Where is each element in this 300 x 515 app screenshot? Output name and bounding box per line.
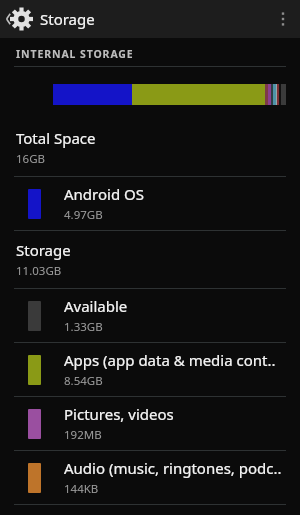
button[interactable]: More options	[266, 0, 300, 38]
staticText: 8.54GB	[64, 373, 103, 389]
staticText: Apps (app data & media cont..	[64, 350, 276, 370]
staticText: Available	[64, 296, 128, 316]
staticText: 192MB	[64, 427, 102, 443]
button[interactable]: Apps (app data & media cont..	[0, 343, 300, 396]
staticText: 1.33GB	[64, 319, 103, 335]
staticText: 144KB	[64, 481, 99, 497]
staticText: Pictures, videos	[64, 404, 174, 424]
staticText: INTERNAL STORAGE	[16, 47, 134, 61]
staticText: 11.03GB	[16, 263, 62, 279]
staticText: Android OS	[64, 184, 144, 204]
staticText: Audio (music, ringtones, podc..	[64, 458, 282, 478]
staticText: Storage	[40, 9, 95, 29]
staticText: Storage	[16, 240, 71, 260]
button[interactable]: Available	[0, 289, 300, 342]
button[interactable]: Back to Settings	[0, 0, 103, 38]
button[interactable]: Android OS	[0, 177, 300, 230]
button[interactable]: Pictures, videos	[0, 397, 300, 450]
button[interactable]: Storage	[0, 231, 300, 288]
button[interactable]: Total Space	[0, 119, 300, 176]
button[interactable]: Audio (music, ringtones, podc..	[0, 451, 300, 504]
other: Back to Settings	[4, 4, 34, 34]
staticText: 16GB	[16, 151, 46, 167]
staticText: Total Space	[16, 128, 96, 148]
staticText: 4.97GB	[64, 207, 103, 223]
